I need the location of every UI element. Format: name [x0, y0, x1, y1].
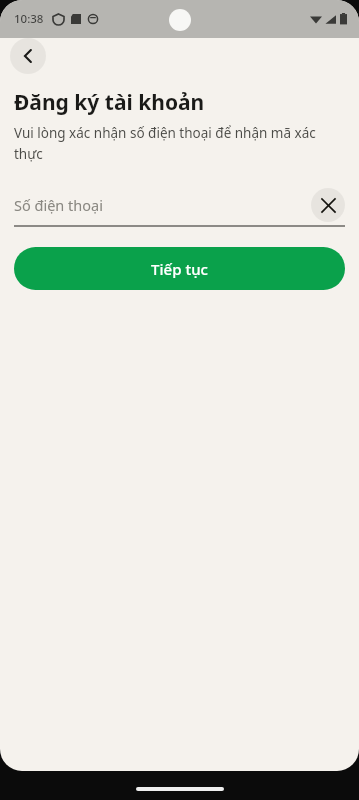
- staticText: Vui lòng xác nhận số điện thoại để nhận …: [14, 124, 345, 163]
- button[interactable]: Số điện thoại: [14, 185, 345, 225]
- button[interactable]: Clear text: [311, 188, 345, 222]
- staticText: Đăng ký tài khoản: [14, 88, 205, 117]
- staticText: 10:38: [14, 11, 44, 27]
- staticText: Số điện thoại: [14, 195, 103, 215]
- button[interactable]: Tiếp tục: [14, 247, 345, 290]
- staticText: Tiếp tục: [151, 259, 208, 279]
- button[interactable]: Back: [10, 38, 46, 74]
